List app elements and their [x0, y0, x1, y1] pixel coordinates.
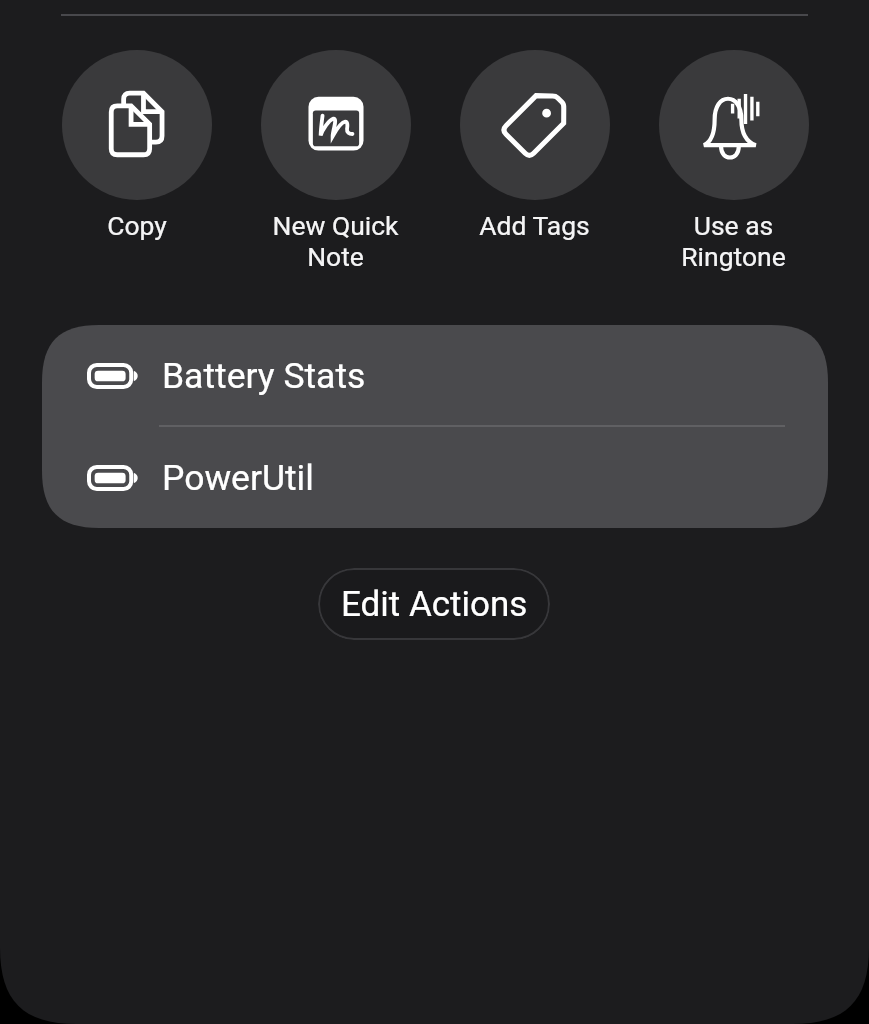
staticText: Edit Actions	[341, 584, 528, 625]
button[interactable]: Use as Ringtone	[634, 50, 833, 273]
staticText: PowerUtil	[162, 457, 314, 499]
button[interactable]: Add Tags	[435, 50, 634, 241]
staticText: Battery Stats	[162, 355, 366, 397]
button[interactable]: Battery Stats	[42, 325, 828, 426]
staticText: Copy	[107, 210, 167, 241]
button[interactable]: New Quick Note	[236, 50, 435, 273]
button[interactable]: PowerUtil	[42, 427, 828, 528]
button[interactable]: Copy	[37, 50, 236, 241]
staticText: Add Tags	[479, 210, 590, 241]
staticText: New Quick Note	[272, 210, 399, 273]
staticText: Use as Ringtone	[681, 210, 786, 273]
button[interactable]: Edit Actions	[318, 568, 550, 640]
